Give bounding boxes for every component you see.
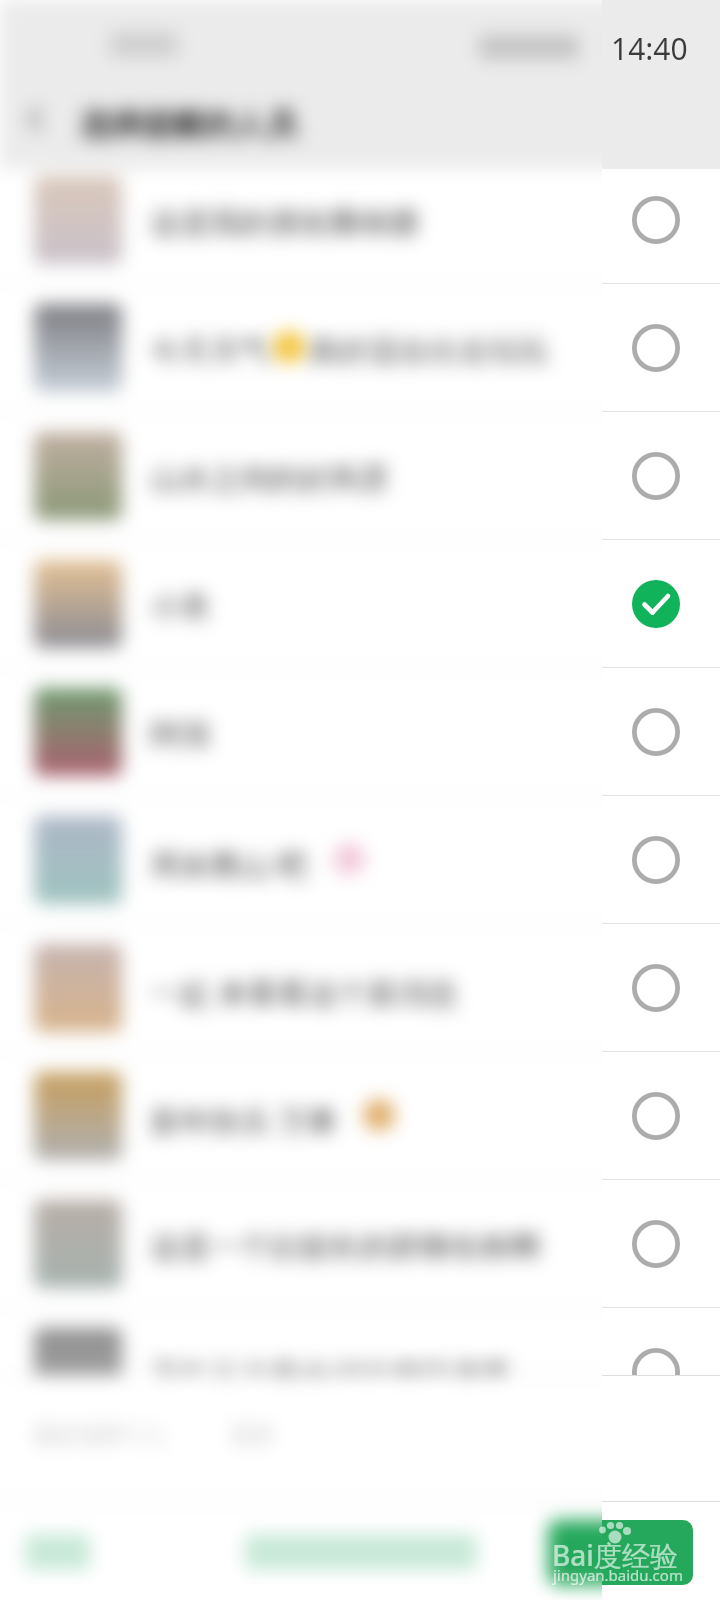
staticText: 下午三点开会讨论项目进度 <box>150 1356 510 1394</box>
staticText: 真好适合出去玩玩 <box>308 332 548 370</box>
staticText: 14:40 <box>611 28 688 69</box>
button[interactable]: 山水之间的好风景 <box>0 412 720 540</box>
button[interactable]: Select <box>632 964 680 1012</box>
button[interactable]: Select <box>632 708 680 756</box>
button[interactable]: Cancel <box>25 1534 90 1570</box>
button[interactable]: Select <box>632 324 680 372</box>
staticText: 真好适合出去玩玩 <box>308 332 548 370</box>
button[interactable]: Select <box>632 836 680 884</box>
staticText: 山水之间的好风景 <box>150 460 390 498</box>
staticText: 阿强 <box>150 716 210 754</box>
staticText: 小美 <box>150 588 210 626</box>
staticText: 这是我的朋友圈相册 <box>150 204 420 242</box>
button[interactable]: 这是我的朋友圈相册 <box>0 156 720 284</box>
staticText: 一起 来看看这个新消息 <box>150 972 458 1013</box>
button[interactable]: Select <box>632 1348 680 1396</box>
staticText: 这是我的朋友圈相册 <box>150 204 420 242</box>
button[interactable]: 今天天气真好适合出去玩玩 <box>0 284 720 412</box>
staticText: 14:40 <box>611 28 688 69</box>
staticText: 一起 来看看这个新消息 <box>150 972 458 1013</box>
staticText: 阿强 <box>150 716 210 754</box>
button[interactable]: Select <box>632 708 680 756</box>
button[interactable]: Selected <box>632 580 680 628</box>
button[interactable]: 阿强 <box>0 668 720 796</box>
staticText: 周末爬山 吧 <box>150 844 308 885</box>
button[interactable]: 一起 来看看这个新消息 <box>0 924 720 1052</box>
button[interactable]: Cancel <box>25 1534 90 1570</box>
button[interactable]: 下午三点开会讨论项目进度 <box>0 1308 720 1436</box>
staticText: 下午三点开会讨论项目进度 <box>150 1356 510 1394</box>
button[interactable]: 小美 <box>0 540 720 668</box>
staticText: 最多选择十人 <box>34 1421 166 1449</box>
button[interactable]: Select <box>632 1348 680 1396</box>
button[interactable]: 一起 来看看这个新消息 <box>0 924 720 1052</box>
button[interactable]: Selected <box>632 580 680 628</box>
staticText: jingyan.baidu.com <box>553 1565 683 1585</box>
staticText: 山水之间的好风景 <box>150 460 390 498</box>
button[interactable]: Select <box>632 452 680 500</box>
staticText: 这是一个比较长的群聊名称啊 <box>150 1228 540 1266</box>
staticText: 新年快乐 万事 <box>150 1100 338 1141</box>
button[interactable]: 新年快乐 万事 <box>0 1052 720 1180</box>
button[interactable]: 这是一个比较长的群聊名称啊 <box>0 1180 720 1308</box>
button[interactable]: Send <box>245 1534 477 1570</box>
button[interactable]: 阿强 <box>0 668 720 796</box>
staticText: 最多选择十人 <box>34 1421 166 1449</box>
staticText: Bai度经验 <box>552 1536 678 1574</box>
staticText: 今天天气 <box>150 332 270 370</box>
button[interactable]: Send <box>245 1534 477 1570</box>
button[interactable]: Select <box>632 964 680 1012</box>
button[interactable]: 这是一个比较长的群聊名称啊 <box>0 1180 720 1308</box>
button[interactable]: Select <box>632 1220 680 1268</box>
button[interactable]: Select <box>632 324 680 372</box>
button[interactable]: Select <box>632 1092 680 1140</box>
staticText: 这是一个比较长的群聊名称啊 <box>150 1228 540 1266</box>
button[interactable]: Select <box>632 1220 680 1268</box>
staticText: 周末爬山 吧 <box>150 844 308 885</box>
button[interactable]: 山水之间的好风景 <box>0 412 720 540</box>
staticText: 选择提醒的人员 <box>80 105 297 144</box>
staticText: 今天天气 <box>150 332 270 370</box>
button[interactable]: Select <box>632 452 680 500</box>
button[interactable]: 周末爬山 吧 <box>0 796 720 924</box>
button[interactable]: Back <box>20 104 50 134</box>
staticText: 小美 <box>150 588 210 626</box>
staticText: 新年快乐 万事 <box>150 1100 338 1141</box>
staticText: 选择提醒的人员 <box>80 105 297 144</box>
button[interactable]: Select <box>632 196 680 244</box>
button[interactable]: Back <box>20 104 50 134</box>
button[interactable]: 今天天气真好适合出去玩玩 <box>0 284 720 412</box>
button[interactable]: Select <box>632 836 680 884</box>
button[interactable]: 下午三点开会讨论项目进度 <box>0 1308 720 1436</box>
button[interactable]: 新年快乐 万事 <box>0 1052 720 1180</box>
button[interactable]: Select <box>632 1092 680 1140</box>
button[interactable]: 小美 <box>0 540 720 668</box>
button[interactable]: 周末爬山 吧 <box>0 796 720 924</box>
button[interactable]: 这是我的朋友圈相册 <box>0 156 720 284</box>
button[interactable]: Select <box>632 196 680 244</box>
